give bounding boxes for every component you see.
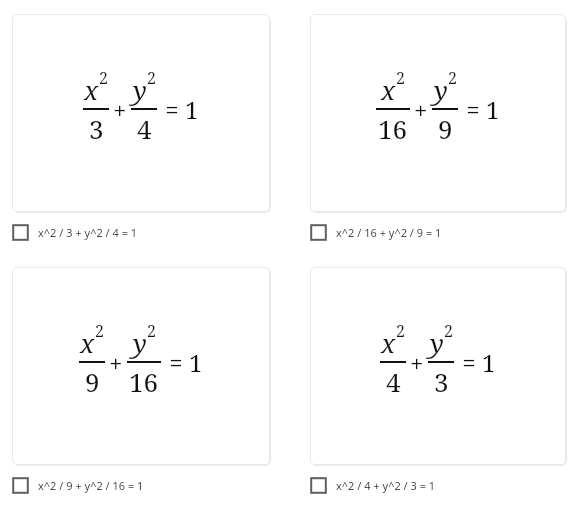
staticText: x <box>80 325 95 360</box>
staticText: x <box>381 325 396 360</box>
staticText: 16 <box>129 364 159 399</box>
button[interactable]: Select x^2 / 4 + y^2 / 3 = 1 <box>310 477 566 494</box>
staticText: x <box>84 72 99 107</box>
staticText: x^2 / 9 + y^2 / 16 = 1 <box>38 478 144 493</box>
staticText: = 1 <box>163 346 203 379</box>
button[interactable]: Select x^2 / 9 + y^2 / 16 = 1 <box>12 477 270 494</box>
staticText: x^2 / 4 + y^2 / 3 = 1 <box>336 478 436 493</box>
staticText: + <box>410 346 424 379</box>
staticText: = 1 <box>159 93 199 126</box>
staticText: 2 <box>99 67 108 89</box>
staticText: + <box>109 346 123 379</box>
staticText: 4 <box>386 364 401 399</box>
button[interactable]: x <box>12 267 270 465</box>
staticText: 2 <box>396 320 405 342</box>
staticText: x^2 / 3 + y^2 / 4 = 1 <box>38 225 138 240</box>
staticText: 3 <box>89 111 104 146</box>
staticText: 2 <box>396 67 405 89</box>
staticText: 2 <box>444 320 453 342</box>
button[interactable]: x <box>310 267 566 465</box>
staticText: 3 <box>434 364 449 399</box>
other: Select x^2 / 16 + y^2 / 9 = 1 <box>310 224 327 241</box>
staticText: 9 <box>85 364 100 399</box>
staticText: y <box>133 72 147 107</box>
staticText: 16 <box>378 111 408 146</box>
staticText: + <box>113 93 127 126</box>
staticText: + <box>414 93 428 126</box>
staticText: x^2 / 16 + y^2 / 9 = 1 <box>336 225 442 240</box>
staticText: = 1 <box>456 346 496 379</box>
staticText: 2 <box>147 320 156 342</box>
button[interactable]: Select x^2 / 16 + y^2 / 9 = 1 <box>310 224 566 241</box>
other: Select x^2 / 9 + y^2 / 16 = 1 <box>12 477 29 494</box>
staticText: 2 <box>95 320 104 342</box>
staticText: 2 <box>448 67 457 89</box>
staticText: y <box>133 325 147 360</box>
staticText: 2 <box>147 67 156 89</box>
button[interactable]: Select x^2 / 3 + y^2 / 4 = 1 <box>12 224 270 241</box>
other: Select x^2 / 3 + y^2 / 4 = 1 <box>12 224 29 241</box>
staticText: = 1 <box>460 93 500 126</box>
staticText: y <box>430 325 444 360</box>
staticText: x <box>381 72 396 107</box>
staticText: 4 <box>137 111 152 146</box>
staticText: 9 <box>438 111 453 146</box>
button[interactable]: x <box>12 14 270 212</box>
button[interactable]: x <box>310 14 566 212</box>
staticText: y <box>434 72 448 107</box>
other: Select x^2 / 4 + y^2 / 3 = 1 <box>310 477 327 494</box>
